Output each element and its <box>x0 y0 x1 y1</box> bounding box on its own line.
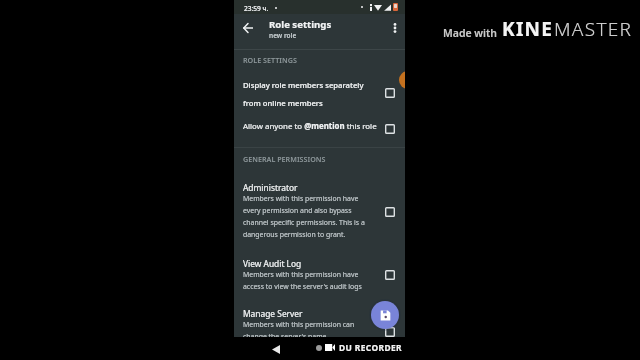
button[interactable]: Toggle permission <box>383 122 397 136</box>
staticText: GENERAL PERMISSIONS <box>243 154 326 164</box>
staticText: Manage Server <box>243 308 303 319</box>
button[interactable]: Display role members separately from onl… <box>234 80 405 108</box>
button[interactable]: More options <box>386 19 404 37</box>
staticText: 23:59 ч. <box>244 4 269 13</box>
button[interactable]: Save <box>371 301 399 329</box>
staticText: MASTER <box>554 16 633 42</box>
staticText: Made with <box>443 26 497 40</box>
button[interactable]: Toggle permission <box>383 205 397 219</box>
staticText: Allow anyone to @mention this role <box>243 121 377 132</box>
button[interactable]: Toggle permission <box>383 325 397 339</box>
button[interactable]: Toggle permission <box>383 268 397 282</box>
staticText: DU RECORDER <box>339 342 402 353</box>
button[interactable]: Back <box>236 16 260 40</box>
staticText: KINE <box>502 16 554 42</box>
button[interactable]: Toggle permission <box>383 86 397 100</box>
button[interactable]: Back <box>268 341 284 357</box>
staticText: Members with this permission can change … <box>243 320 355 341</box>
staticText: Display role members separately from onl… <box>243 80 364 108</box>
staticText: Role settings <box>269 18 332 31</box>
staticText: ROLE SETTINGS <box>243 55 297 65</box>
button[interactable]: Administrator <box>234 182 405 239</box>
staticText: Members with this permission have access… <box>243 270 362 291</box>
staticText: View Audit Log <box>243 258 302 269</box>
button[interactable]: Manage Server <box>234 308 405 341</box>
staticText: new role <box>269 31 297 40</box>
button[interactable]: View Audit Log <box>234 258 405 291</box>
staticText: Members with this permission have every … <box>243 194 365 239</box>
staticText: Administrator <box>243 182 298 193</box>
button[interactable]: Allow anyone to @mention this role <box>234 121 405 132</box>
